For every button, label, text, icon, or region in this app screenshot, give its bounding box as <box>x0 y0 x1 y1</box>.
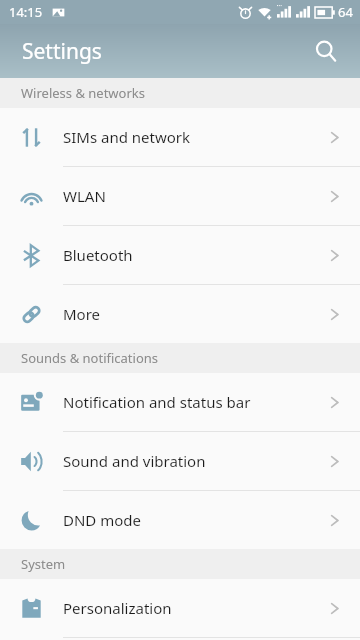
button[interactable]: DND mode <box>0 491 360 549</box>
button[interactable]: Sound and vibration <box>0 432 360 491</box>
staticText: DND mode <box>63 510 329 530</box>
button[interactable]: More <box>0 285 360 343</box>
staticText: SIMs and network <box>63 127 329 147</box>
button[interactable]: Notification and status bar <box>0 373 360 432</box>
button[interactable]: WLAN <box>0 167 360 226</box>
staticText: 64 <box>338 3 353 21</box>
button[interactable]: Personalization <box>0 579 360 638</box>
button[interactable]: Bluetooth <box>0 226 360 285</box>
staticText: Sound and vibration <box>63 451 329 471</box>
staticText: More <box>63 304 329 324</box>
staticText: Notification and status bar <box>63 392 329 412</box>
staticText: System <box>21 555 66 573</box>
staticText: 14:15 <box>9 3 43 21</box>
button[interactable]: Search <box>304 29 348 73</box>
staticText: Bluetooth <box>63 245 329 265</box>
button[interactable]: SIMs and network <box>0 108 360 167</box>
staticText: Sounds & notifications <box>21 349 159 367</box>
staticText: Personalization <box>63 598 329 618</box>
staticText: Settings <box>22 37 102 66</box>
staticText: Wireless & networks <box>21 84 145 102</box>
staticText: WLAN <box>63 186 329 206</box>
